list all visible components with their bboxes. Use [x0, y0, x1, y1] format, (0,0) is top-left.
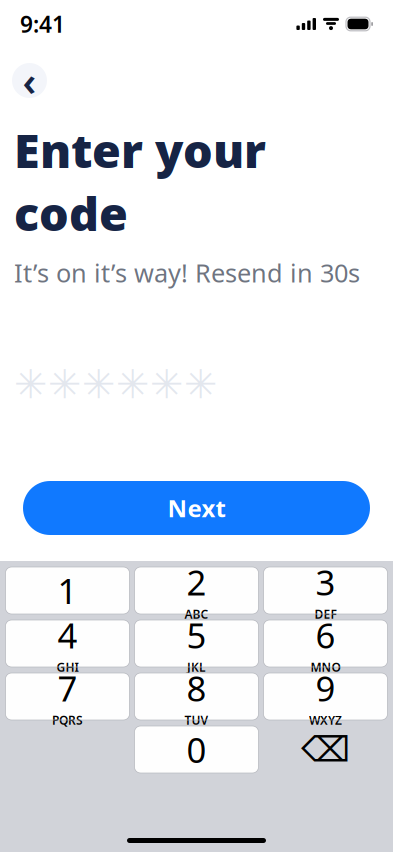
staticText: ✳✳✳✳✳✳ — [14, 362, 218, 407]
staticText: ‹ — [22, 54, 36, 107]
staticText: 9 — [315, 665, 335, 711]
staticText: 1 — [57, 567, 77, 613]
staticText: PQRS — [52, 712, 83, 728]
staticText: DEF — [314, 606, 336, 622]
staticText: 9:41 — [20, 9, 65, 39]
staticText: Enter your — [14, 119, 266, 181]
staticText: 0 — [186, 726, 206, 772]
button[interactable]: 2 — [134, 567, 258, 614]
staticText: code — [14, 182, 128, 244]
button[interactable]: 5 — [134, 620, 258, 667]
staticText: WXYZ — [309, 712, 342, 728]
button[interactable]: 9 — [263, 673, 387, 720]
button[interactable]: 1 — [5, 567, 129, 614]
staticText: 7 — [57, 665, 77, 711]
button[interactable]: Back — [12, 63, 47, 98]
button[interactable]: 7 — [5, 673, 129, 720]
staticText: ABC — [184, 606, 208, 622]
button[interactable]: 0 — [134, 726, 258, 773]
staticText: 2 — [186, 559, 206, 605]
staticText: Next — [167, 492, 225, 524]
button[interactable]: 4 — [5, 620, 129, 667]
staticText: TUV — [184, 712, 208, 728]
button[interactable]: 3 — [263, 567, 387, 614]
button[interactable]: 8 — [134, 673, 258, 720]
staticText: 6 — [315, 612, 335, 658]
button[interactable]: 6 — [263, 620, 387, 667]
button[interactable]: Delete — [263, 726, 387, 773]
staticText: JKL — [187, 659, 206, 675]
staticText: ⌫ — [301, 730, 350, 769]
button[interactable]: Next — [23, 481, 370, 535]
staticText: MNO — [310, 659, 340, 675]
staticText: GHI — [56, 659, 78, 675]
staticText: 5 — [186, 612, 206, 658]
staticText: 8 — [186, 665, 206, 711]
staticText: 3 — [315, 559, 335, 605]
staticText: It’s on it’s way! Resend in 30s — [14, 256, 360, 289]
staticText: 4 — [57, 612, 77, 658]
